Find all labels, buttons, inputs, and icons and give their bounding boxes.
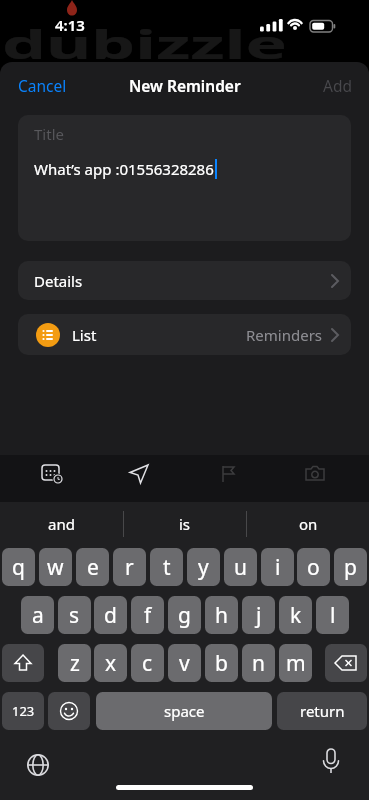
staticText: n [252, 649, 265, 678]
staticText: r [125, 553, 134, 582]
button[interactable]: Details [18, 261, 351, 300]
button[interactable]: List [18, 314, 351, 355]
staticText: i [275, 553, 281, 582]
button[interactable]: v [168, 644, 201, 682]
button[interactable]: 123 [2, 692, 44, 730]
button[interactable]: c [131, 644, 164, 682]
button[interactable]: on [247, 502, 369, 545]
staticText: Title [34, 124, 64, 144]
button[interactable]: u [224, 548, 257, 586]
staticText: q [12, 553, 25, 582]
staticText: on [299, 514, 318, 534]
staticText: a [32, 601, 44, 630]
button[interactable]: j [242, 596, 275, 634]
staticText: Add [323, 75, 352, 96]
staticText: and [48, 514, 75, 534]
staticText: g [178, 601, 191, 630]
button[interactable]: s [58, 596, 91, 634]
button[interactable]: a [21, 596, 54, 634]
button[interactable]: m [279, 644, 312, 682]
staticText: Details [34, 271, 83, 291]
button[interactable]: l [316, 596, 349, 634]
staticText: return [300, 701, 345, 721]
staticText: u [234, 553, 247, 582]
staticText: f [144, 601, 152, 630]
staticText: p [344, 553, 357, 582]
button[interactable] [123, 458, 155, 490]
staticText: s [69, 601, 80, 630]
staticText: o [307, 553, 320, 582]
button[interactable] [212, 458, 244, 490]
staticText: Reminders [246, 325, 323, 345]
staticText: k [290, 601, 302, 630]
button[interactable]: z [58, 644, 91, 682]
button[interactable]: Cancel [18, 75, 67, 96]
button[interactable]: f [131, 596, 164, 634]
button[interactable]: t [150, 548, 183, 586]
staticText: l [330, 601, 336, 630]
button[interactable]: k [279, 596, 312, 634]
button[interactable] [36, 458, 68, 490]
button[interactable]: e [76, 548, 109, 586]
staticText: m [286, 649, 306, 678]
staticText: d [104, 601, 117, 630]
button[interactable]: is [124, 502, 246, 545]
staticText: v [179, 649, 190, 678]
staticText: x [105, 649, 117, 678]
staticText: j [256, 601, 262, 630]
staticText: 4:13 [55, 15, 85, 35]
staticText: space [164, 701, 205, 721]
button[interactable] [299, 458, 331, 490]
button[interactable]: Add [323, 75, 352, 96]
button[interactable]: and [0, 502, 123, 545]
staticText: New Reminder [129, 75, 241, 96]
staticText: e [87, 553, 99, 582]
button[interactable]: return [277, 692, 367, 730]
button[interactable]: g [168, 596, 201, 634]
staticText: y [198, 553, 209, 582]
button[interactable]: y [187, 548, 220, 586]
button[interactable]: o [297, 548, 330, 586]
button[interactable]: b [205, 644, 238, 682]
staticText: What’s app :01556328286 [34, 159, 214, 179]
button[interactable]: space [96, 692, 272, 730]
button[interactable] [2, 644, 44, 682]
button[interactable] [315, 746, 347, 778]
button[interactable]: q [2, 548, 35, 586]
staticText: Cancel [18, 75, 67, 96]
button[interactable] [22, 749, 54, 781]
button[interactable] [48, 692, 90, 730]
button[interactable] [325, 644, 367, 682]
button[interactable]: w [39, 548, 72, 586]
button[interactable]: r [113, 548, 146, 586]
staticText: w [47, 553, 64, 582]
staticText: dubizzle [2, 16, 287, 70]
staticText: h [215, 601, 228, 630]
staticText: z [70, 649, 80, 678]
staticText: is [179, 514, 191, 534]
button[interactable]: p [334, 548, 367, 586]
button[interactable]: h [205, 596, 238, 634]
button[interactable]: x [94, 644, 127, 682]
button[interactable]: d [94, 596, 127, 634]
staticText: 123 [12, 702, 35, 720]
staticText: List [72, 325, 97, 345]
staticText: t [163, 553, 171, 582]
button[interactable]: n [242, 644, 275, 682]
button[interactable]: i [261, 548, 294, 586]
staticText: b [215, 649, 228, 678]
staticText: c [142, 649, 153, 678]
